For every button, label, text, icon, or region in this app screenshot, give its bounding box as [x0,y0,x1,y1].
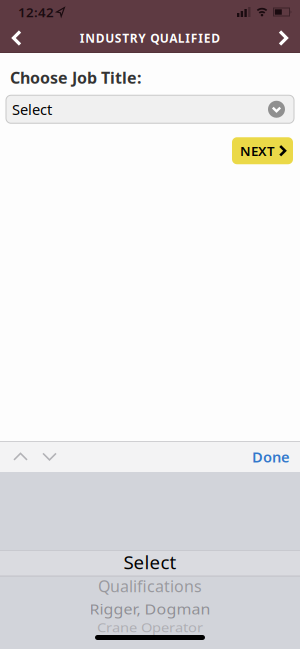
staticText: Rigger, Dogman [89,598,210,620]
button[interactable]: Back [0,23,31,52]
button[interactable]: Previous field [0,442,28,472]
button[interactable]: Forward [269,23,300,52]
staticText: INDUSTRY QUALIFIED [80,30,220,46]
button[interactable]: NEXT [232,137,293,164]
staticText: Select [123,550,176,574]
staticText: Select [12,99,52,119]
button[interactable]: Select job title [6,95,294,123]
staticText: Choose Job Title: [10,67,141,88]
staticText: NEXT [240,142,275,160]
button[interactable]: Next field [28,442,57,472]
staticText: Qualifications [98,575,202,597]
staticText: Done [252,447,290,467]
button[interactable]: Done [252,442,300,472]
staticText: Crane Operator [97,618,203,637]
staticText: 12:42 [18,3,54,21]
